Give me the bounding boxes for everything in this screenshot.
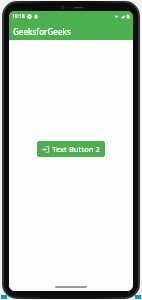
staticText: Text Button 2: [52, 144, 100, 154]
button[interactable]: Login: [37, 141, 105, 157]
staticText: 10:18: [12, 13, 25, 20]
button[interactable]: GeeksforGeeks: [9, 22, 133, 40]
staticText: GeeksforGeeks: [13, 26, 71, 37]
other: Login: [42, 146, 49, 153]
